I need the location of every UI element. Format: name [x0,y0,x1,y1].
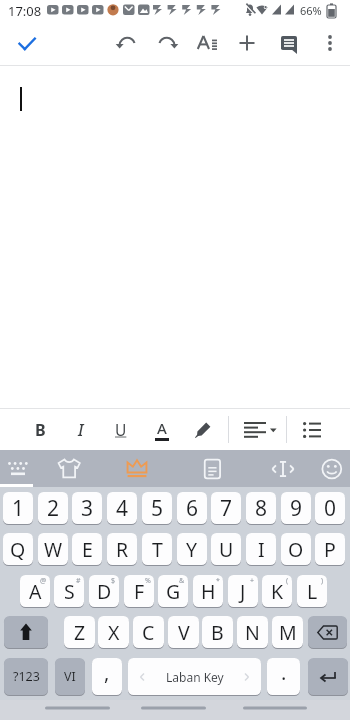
staticText: B [211,619,224,646]
staticText: A [157,418,167,438]
staticText: S [64,578,75,605]
staticText: 6 [186,494,199,523]
staticText: @ [40,576,47,586]
staticText: 66% [300,3,322,18]
button[interactable] [187,20,227,65]
button[interactable]: R [107,533,137,565]
button[interactable]: J [228,575,258,607]
staticText: VI [64,668,76,685]
button[interactable]: D [89,575,119,607]
button[interactable]: E [72,533,102,565]
button[interactable]: 2 [38,492,68,524]
button[interactable]: I [62,409,99,450]
staticText: 7 [220,494,233,523]
staticText: # [76,576,81,586]
button[interactable]: B [22,409,59,450]
button[interactable] [238,409,282,450]
button[interactable] [8,24,46,62]
button[interactable]: 9 [281,492,311,524]
button[interactable]: 4 [107,492,137,524]
button[interactable] [310,20,350,65]
button[interactable] [184,409,221,450]
staticText: W [44,536,63,563]
button[interactable] [227,20,267,65]
button[interactable]: 7 [211,492,241,524]
staticText: 2 [47,494,60,523]
button[interactable]: Y [177,533,207,565]
button[interactable]: F [124,575,154,607]
button[interactable]: ?123 [4,658,48,695]
button[interactable]: K [262,575,292,607]
button[interactable] [308,658,348,695]
button[interactable]: S [54,575,84,607]
button[interactable] [0,66,350,408]
button[interactable]: Q [3,533,33,565]
staticText: F [134,578,145,605]
button[interactable]: 3 [72,492,102,524]
button[interactable]: O [281,533,311,565]
button[interactable]: A [143,409,180,450]
button[interactable] [107,20,147,65]
staticText: T [152,536,163,563]
staticText: ) [321,576,324,586]
button[interactable]: A [20,575,50,607]
button[interactable]: 0 [315,492,345,524]
button[interactable] [233,700,350,720]
staticText: H [201,578,216,605]
staticText: M [279,619,297,646]
staticText: Y [186,536,198,563]
staticText: % [145,576,151,586]
staticText: 4 [116,494,129,523]
staticText: Q [10,536,26,563]
button[interactable]: N [237,616,268,648]
button[interactable]: C [133,616,164,648]
staticText: 9 [290,494,303,523]
button[interactable] [50,450,86,487]
button[interactable]: 6 [177,492,207,524]
button[interactable] [0,450,36,487]
button[interactable] [119,450,155,487]
button[interactable] [195,450,231,487]
button[interactable] [308,616,347,648]
button[interactable]: V [168,616,199,648]
button[interactable]: VI [55,658,85,695]
staticText: E [82,536,93,563]
button[interactable]: W [38,533,68,565]
staticText: ( [286,576,289,586]
button[interactable]: U [102,409,139,450]
button[interactable]: U [211,533,241,565]
button[interactable] [315,450,350,487]
button[interactable]: M [272,616,303,648]
staticText: J [240,578,246,605]
staticText: C [142,619,155,646]
staticText: 8 [255,494,268,523]
staticText: X [108,619,120,646]
button[interactable]: G [158,575,188,607]
button[interactable] [265,450,301,487]
button[interactable]: X [98,616,129,648]
button[interactable] [292,409,332,450]
button[interactable]: H [193,575,223,607]
button[interactable]: B [202,616,233,648]
button[interactable]: T [142,533,172,565]
button[interactable]: 1 [3,492,33,524]
button[interactable]: P [315,533,345,565]
button[interactable]: L [297,575,327,607]
staticText: & [179,576,185,586]
button[interactable] [4,616,48,648]
button[interactable] [147,20,187,65]
button[interactable] [0,700,116,720]
staticText: U [219,536,234,563]
button[interactable] [116,700,233,720]
staticText: Laban Key [166,669,224,685]
button[interactable]: 8 [246,492,276,524]
staticText: U [115,419,127,440]
button[interactable]: . [267,658,300,695]
button[interactable]: I [246,533,276,565]
button[interactable]: 5 [142,492,172,524]
button[interactable]: Z [64,616,95,648]
button[interactable] [269,20,309,65]
staticText: $ [111,576,116,586]
button[interactable]: Laban Key [128,658,261,695]
button[interactable]: , [92,658,122,695]
